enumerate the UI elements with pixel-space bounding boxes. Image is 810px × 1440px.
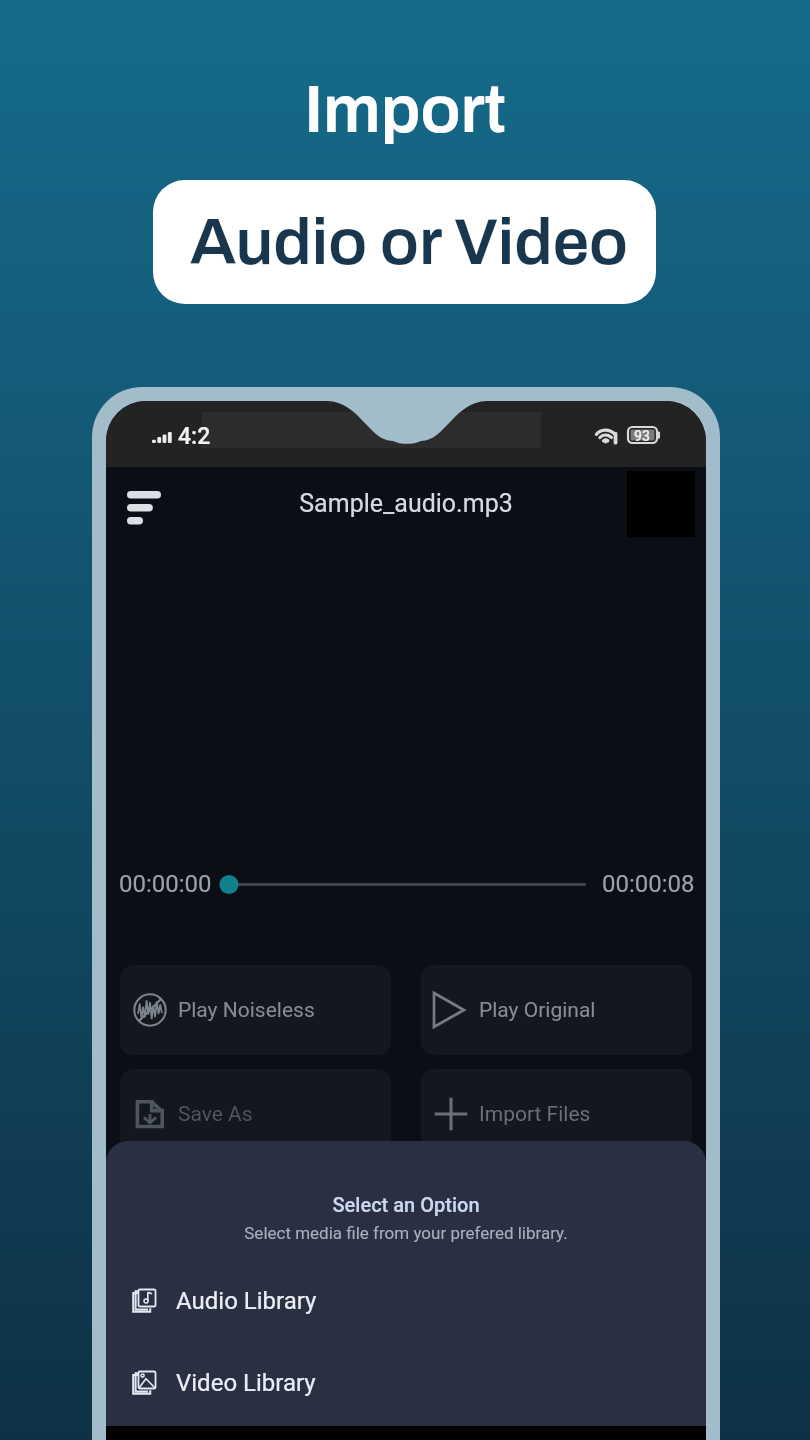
button[interactable]: Save As xyxy=(120,1069,391,1159)
button[interactable]: Sort xyxy=(116,477,172,533)
staticText: Video Library xyxy=(176,1369,316,1397)
staticText: Import xyxy=(0,73,810,146)
staticText: Play Original xyxy=(479,998,596,1023)
button[interactable]: Play Noiseless xyxy=(120,965,391,1055)
staticText: Audio or Video xyxy=(190,207,628,278)
staticText: 4:2 xyxy=(178,423,211,450)
staticText: Save As xyxy=(178,1102,253,1127)
staticText: 00:00:08 xyxy=(602,870,695,898)
staticText: 93 xyxy=(634,428,650,444)
button[interactable]: Audio or Video xyxy=(153,180,656,304)
button[interactable]: Play Original xyxy=(421,965,692,1055)
staticText: Play Noiseless xyxy=(178,998,315,1023)
button[interactable]: Import Files xyxy=(421,1069,692,1159)
button[interactable]: Video Library xyxy=(106,1354,706,1412)
staticText: Import Files xyxy=(479,1102,591,1127)
button[interactable]: Audio Library xyxy=(106,1272,706,1330)
staticText: Select an Option xyxy=(106,1193,706,1216)
staticText: Select media file from your prefered lib… xyxy=(106,1223,706,1243)
staticText: Audio Library xyxy=(176,1287,317,1315)
staticText: Sample_audio.mp3 xyxy=(106,489,706,518)
staticText: 00:00:00 xyxy=(119,870,212,898)
